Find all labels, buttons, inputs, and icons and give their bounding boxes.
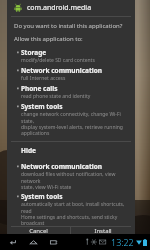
staticText: Phone calls [21, 84, 58, 93]
staticText: change network connectivity, change Wi-F… [21, 111, 135, 136]
staticText: Network communication [21, 66, 103, 75]
button[interactable]: Cancel [7, 227, 70, 234]
staticText: Do you want to install this application? [14, 22, 123, 30]
staticText: download files without notification, vie… [21, 171, 135, 190]
staticText: Storage [21, 48, 47, 57]
staticText: read phone state and identity [21, 93, 91, 100]
button[interactable]: Install [71, 227, 135, 234]
staticText: System tools [21, 102, 63, 111]
staticText: modify/delete SD card contents [21, 57, 95, 64]
button[interactable]: Home [28, 237, 39, 248]
other: App icon [14, 4, 22, 12]
staticText: Install [94, 227, 112, 234]
staticText: 13:22 [111, 236, 134, 248]
staticText: Hide [21, 146, 36, 155]
button[interactable]: Recent apps [48, 237, 59, 248]
staticText: com.android.media [27, 3, 92, 13]
button[interactable]: Hide [7, 146, 135, 155]
staticText: full Internet access [21, 75, 66, 82]
staticText: Allow this application to: [14, 35, 83, 43]
staticText: automatically start at boot, install sho… [21, 201, 135, 226]
staticText: Cancel [29, 227, 48, 234]
staticText: System tools [21, 192, 63, 201]
button[interactable]: Back [8, 237, 19, 248]
staticText: Network communication [21, 162, 103, 171]
